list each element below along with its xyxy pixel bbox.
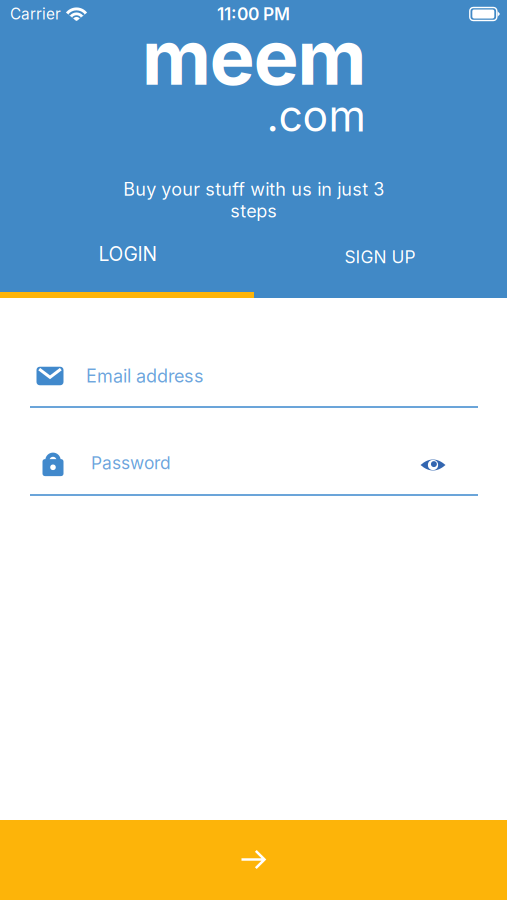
staticText: 11:00 PM [217,3,290,24]
staticText: LOGIN [98,242,157,266]
staticText: Carrier [10,5,61,23]
staticText: meem [142,11,366,103]
button[interactable]: SIGN UP [253,226,506,288]
staticText: SIGN UP [344,246,415,267]
button[interactable]: Continue [0,820,507,900]
staticText: Buy your stuff with us in just 3 steps [123,178,384,222]
button[interactable]: Show password [408,443,458,487]
button[interactable]: LOGIN [1,223,255,285]
staticText: Email address [86,365,204,387]
staticText: .com [266,90,365,142]
staticText: Password [91,452,171,473]
